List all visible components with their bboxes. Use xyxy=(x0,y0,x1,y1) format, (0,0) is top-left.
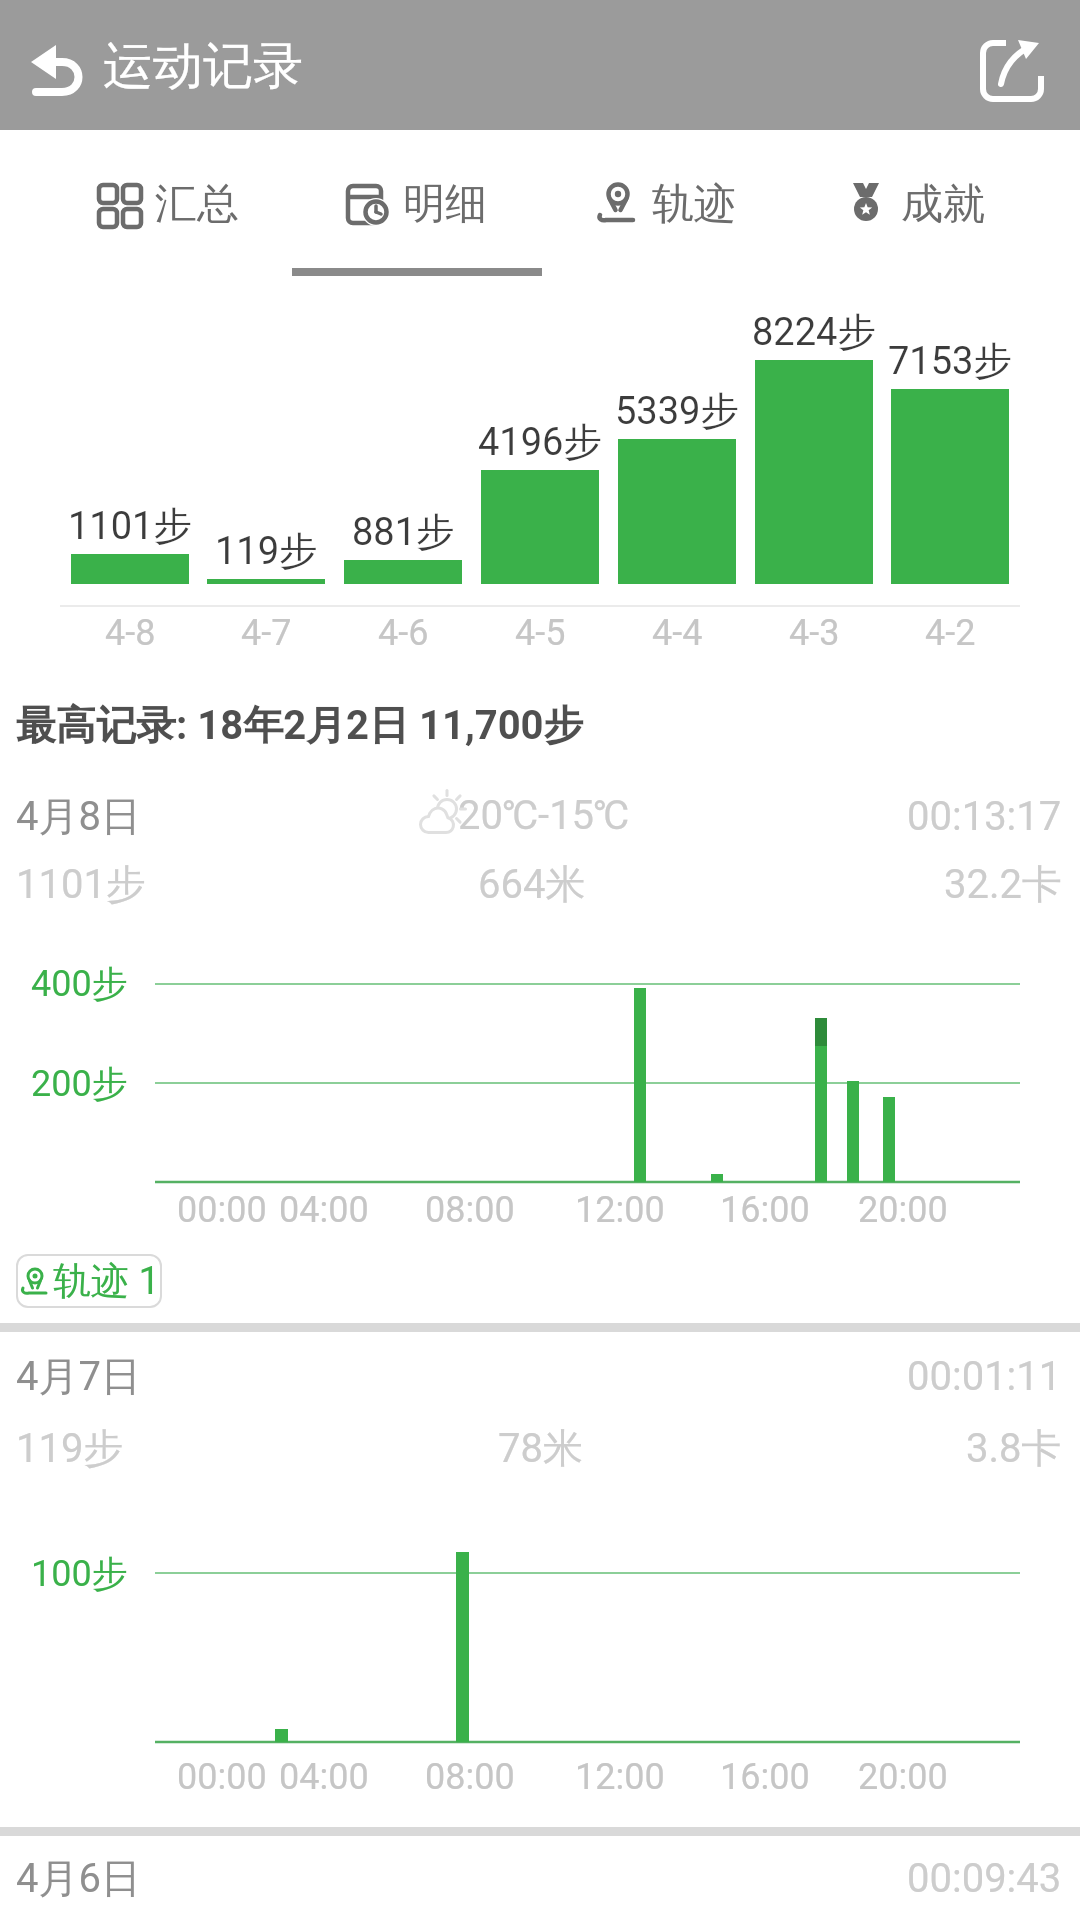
staticText: 32.2卡 xyxy=(944,859,1062,909)
staticText: 4-3 xyxy=(789,612,840,654)
staticText: 00:13:17 xyxy=(907,793,1062,840)
staticText: 4196步 xyxy=(478,418,602,466)
staticText: 12:00 xyxy=(575,1189,665,1231)
staticText: 7153步 xyxy=(888,337,1012,385)
staticText: 20:00 xyxy=(858,1756,948,1798)
staticText: 1101步 xyxy=(68,502,192,550)
staticText: 78米 xyxy=(498,1423,583,1473)
staticText: 1101步 xyxy=(16,859,146,909)
staticText: 04:00 xyxy=(279,1756,369,1798)
staticText: 4-4 xyxy=(652,612,703,654)
staticText: 119步 xyxy=(215,527,318,575)
staticText: 20:00 xyxy=(858,1189,948,1231)
button[interactable] xyxy=(976,34,1052,106)
staticText: 04:00 xyxy=(279,1189,369,1231)
staticText: 100步 xyxy=(31,1551,128,1596)
staticText: 400步 xyxy=(31,961,128,1006)
button[interactable] xyxy=(22,34,94,100)
staticText: 明细 xyxy=(403,178,487,231)
staticText: 4月6日 xyxy=(16,1853,141,1903)
staticText: 12:00 xyxy=(575,1756,665,1798)
staticText: 成就 xyxy=(901,178,985,231)
button[interactable]: 轨迹 xyxy=(540,158,790,250)
staticText: 4-6 xyxy=(378,612,429,654)
staticText: 运动记录 xyxy=(103,35,303,98)
staticText: 664米 xyxy=(478,859,586,909)
staticText: 4-5 xyxy=(515,612,566,654)
staticText: 4月8日 xyxy=(16,791,141,841)
staticText: 16:00 xyxy=(720,1189,810,1231)
button[interactable]: 明细 xyxy=(291,158,541,250)
staticText: 08:00 xyxy=(425,1189,515,1231)
staticText: 20℃-15℃ xyxy=(458,792,630,839)
button[interactable]: 轨迹 1 xyxy=(16,1254,162,1308)
staticText: 4月7日 xyxy=(16,1351,141,1401)
staticText: 5339步 xyxy=(615,387,739,435)
staticText: 最高记录: 18年2月2日 11,700步 xyxy=(16,700,584,750)
button[interactable]: 汇总 xyxy=(43,158,293,250)
staticText: 轨迹 1 xyxy=(53,1257,160,1305)
button[interactable]: 成就 xyxy=(789,158,1039,250)
staticText: 00:00 xyxy=(177,1189,267,1231)
staticText: 00:01:11 xyxy=(907,1353,1062,1400)
staticText: 轨迹 xyxy=(652,178,736,231)
staticText: 4-8 xyxy=(105,612,156,654)
staticText: 881步 xyxy=(352,508,455,556)
staticText: 3.8卡 xyxy=(966,1423,1062,1473)
staticText: 00:09:43 xyxy=(907,1855,1062,1902)
staticText: 119步 xyxy=(16,1423,124,1473)
staticText: 00:00 xyxy=(177,1756,267,1798)
staticText: 200步 xyxy=(31,1061,128,1106)
staticText: 16:00 xyxy=(720,1756,810,1798)
staticText: 4-7 xyxy=(241,612,292,654)
staticText: 8224步 xyxy=(752,308,876,356)
staticText: 汇总 xyxy=(155,178,239,231)
staticText: 4-2 xyxy=(925,612,976,654)
staticText: 08:00 xyxy=(425,1756,515,1798)
